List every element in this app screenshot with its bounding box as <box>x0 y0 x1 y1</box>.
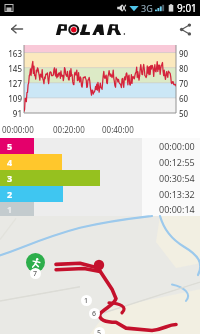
staticText: 60 <box>179 93 199 104</box>
button[interactable]: Share <box>170 16 200 42</box>
staticText: 00:13:32 <box>159 188 195 200</box>
staticText: 00:20:00 <box>53 124 85 135</box>
staticText: 00:30:54 <box>159 172 195 184</box>
button[interactable]: 2 <box>0 186 200 202</box>
staticText: 90 <box>179 48 199 59</box>
button[interactable]: 1 <box>0 202 200 216</box>
button[interactable]: 5 <box>94 327 105 334</box>
staticText: 1 <box>84 296 89 306</box>
button[interactable]: 7 <box>30 268 41 279</box>
staticText: 3 <box>7 172 13 184</box>
staticText: 7 <box>33 269 38 279</box>
button[interactable]: 4 <box>0 154 200 170</box>
staticText: 91 <box>0 108 22 119</box>
staticText: 70 <box>179 78 199 89</box>
staticText: 00:00:14 <box>159 203 195 215</box>
staticText: 00:00:00 <box>159 140 195 152</box>
staticText: 00:40:00 <box>102 124 134 135</box>
staticText: 5 <box>7 140 13 152</box>
button[interactable]: Back <box>0 16 34 42</box>
button[interactable]: Route map <box>0 216 200 334</box>
staticText: 127 <box>0 78 22 89</box>
button[interactable]: 5 <box>0 138 200 154</box>
staticText: 80 <box>179 63 199 74</box>
staticText: 2 <box>7 188 13 200</box>
staticText: 109 <box>0 93 22 104</box>
staticText: 00:00:00 <box>2 124 34 135</box>
staticText: 00:12:55 <box>159 156 195 168</box>
staticText: 1 <box>7 203 13 215</box>
staticText: 5 <box>97 328 102 334</box>
staticText: 3G <box>141 2 153 14</box>
staticText: 9:01 <box>177 1 197 15</box>
staticText: 145 <box>0 63 22 74</box>
button[interactable]: 1 <box>81 295 92 306</box>
button[interactable]: Start of workout <box>26 253 45 272</box>
button[interactable]: 6 <box>89 308 100 319</box>
staticText: 163 <box>0 48 22 59</box>
button[interactable]: 3 <box>0 170 200 186</box>
staticText: 6 <box>92 309 97 319</box>
staticText: 4 <box>7 156 13 168</box>
staticText: 50 <box>179 108 199 119</box>
